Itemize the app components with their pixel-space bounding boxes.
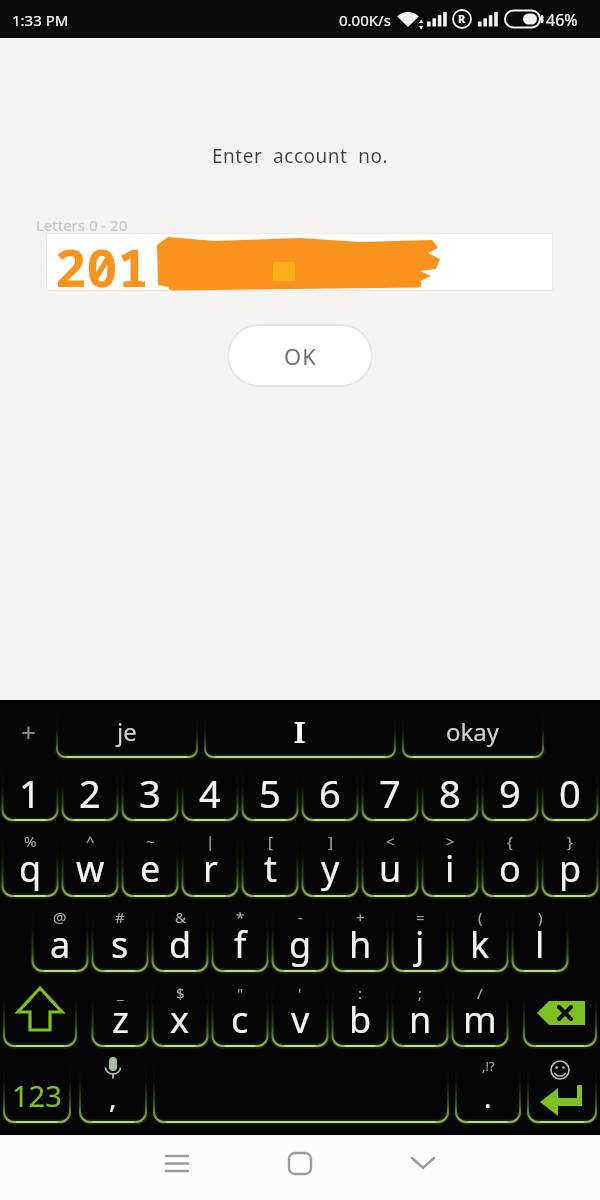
button[interactable]: u: [360, 842, 420, 894]
staticText: c: [231, 995, 249, 1044]
staticText: (: [478, 907, 483, 927]
staticText: =: [416, 907, 425, 927]
staticText: &: [175, 907, 186, 927]
button[interactable]: s: [90, 918, 150, 970]
staticText: -: [298, 907, 303, 927]
staticText: .: [484, 1078, 492, 1116]
button[interactable]: z: [90, 993, 150, 1045]
button[interactable]: [528, 1051, 596, 1122]
staticText: 1:33 PM: [12, 10, 69, 30]
staticText: okay: [446, 715, 500, 748]
button[interactable]: [154, 1051, 448, 1122]
staticText: 1: [19, 767, 41, 819]
button[interactable]: h: [330, 918, 390, 970]
staticText: ,: [109, 1078, 117, 1116]
staticText: ]: [328, 831, 333, 851]
staticText: ,!?: [482, 1057, 495, 1075]
button[interactable]: 7: [360, 764, 420, 822]
button[interactable]: t: [240, 842, 300, 894]
staticText: Enter account no.: [212, 143, 389, 169]
button[interactable]: v: [270, 993, 330, 1045]
staticText: u: [379, 844, 402, 893]
button[interactable]: w: [60, 842, 120, 894]
staticText: k: [470, 920, 490, 969]
button[interactable]: 9: [480, 764, 540, 822]
staticText: b: [349, 995, 372, 1044]
button[interactable]: e: [120, 842, 180, 894]
staticText: *: [236, 907, 245, 927]
staticText: g: [289, 920, 312, 969]
staticText: t: [264, 844, 277, 893]
button[interactable]: I: [205, 708, 395, 755]
button[interactable]: q: [0, 842, 60, 894]
button[interactable]: d: [150, 918, 210, 970]
button[interactable]: i: [420, 842, 480, 894]
staticText: ': [298, 983, 302, 1003]
button[interactable]: n: [390, 993, 450, 1045]
staticText: 4: [199, 767, 221, 819]
button[interactable]: +: [8, 711, 48, 751]
staticText: a: [50, 920, 71, 969]
button[interactable]: b: [330, 993, 390, 1045]
button[interactable]: [524, 976, 596, 1046]
button[interactable]: je: [57, 708, 197, 755]
button[interactable]: 5: [240, 764, 300, 822]
staticText: {: [507, 831, 513, 851]
button[interactable]: r: [180, 842, 240, 894]
staticText: 5: [259, 767, 281, 819]
button[interactable]: g: [270, 918, 330, 970]
staticText: 2: [79, 767, 101, 819]
button[interactable]: f: [210, 918, 270, 970]
staticText: d: [169, 920, 192, 969]
staticText: 6: [319, 767, 341, 819]
button[interactable]: 2: [60, 764, 120, 822]
button[interactable]: [4, 976, 76, 1046]
staticText: l: [535, 920, 545, 969]
staticText: ): [538, 907, 543, 927]
staticText: o: [499, 844, 521, 893]
button[interactable]: p: [540, 842, 600, 894]
staticText: 201: [55, 231, 149, 289]
staticText: q: [19, 844, 42, 893]
button[interactable]: 6: [300, 764, 360, 822]
staticText: $: [176, 983, 185, 1003]
button[interactable]: l: [510, 918, 570, 970]
button[interactable]: c: [210, 993, 270, 1045]
staticText: w: [76, 844, 105, 893]
button[interactable]: OK: [227, 324, 373, 387]
button[interactable]: a: [30, 918, 90, 970]
button[interactable]: y: [300, 842, 360, 894]
button[interactable]: 0: [540, 764, 600, 822]
staticText: n: [409, 995, 432, 1044]
staticText: %: [24, 831, 37, 851]
staticText: ;: [418, 983, 423, 1003]
staticText: f: [234, 920, 247, 969]
button[interactable]: 201: [46, 233, 553, 291]
button[interactable]: 123: [4, 1070, 70, 1120]
staticText: >: [446, 831, 455, 851]
button[interactable]: okay: [403, 708, 543, 755]
staticText: 7: [379, 767, 401, 819]
button[interactable]: ,: [80, 1077, 146, 1117]
staticText: 8: [439, 767, 461, 819]
staticText: +: [356, 907, 365, 927]
button[interactable]: [280, 1141, 320, 1193]
button[interactable]: x: [150, 993, 210, 1045]
button[interactable]: [403, 1141, 443, 1193]
staticText: }: [567, 831, 573, 851]
staticText: h: [349, 920, 372, 969]
button[interactable]: .: [456, 1077, 520, 1117]
staticText: je: [117, 715, 137, 748]
button[interactable]: k: [450, 918, 510, 970]
staticText: ^: [86, 831, 95, 851]
button[interactable]: 3: [120, 764, 180, 822]
button[interactable]: j: [390, 918, 450, 970]
button[interactable]: o: [480, 842, 540, 894]
button[interactable]: 1: [0, 764, 60, 822]
button[interactable]: 8: [420, 764, 480, 822]
button[interactable]: 4: [180, 764, 240, 822]
button[interactable]: m: [450, 993, 510, 1045]
staticText: #: [115, 907, 125, 927]
staticText: :: [358, 983, 363, 1003]
button[interactable]: [157, 1141, 197, 1193]
